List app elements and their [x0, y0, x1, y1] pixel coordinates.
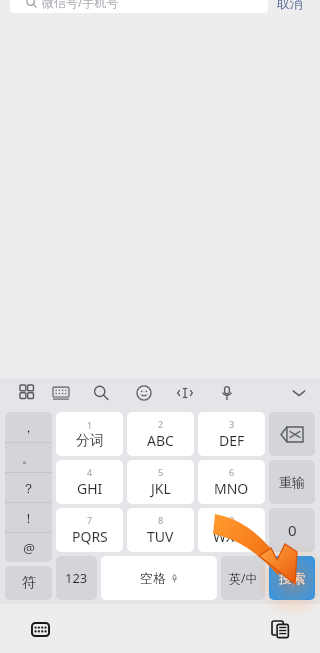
button[interactable]: 4	[56, 460, 123, 504]
staticText: 7	[87, 514, 93, 526]
staticText: 8	[158, 514, 164, 526]
staticText: 微信号/手机号	[42, 0, 119, 10]
staticText: DEF	[219, 431, 245, 450]
button[interactable]: Switch keyboard	[24, 613, 56, 645]
button[interactable]: Hide keyboard	[285, 378, 313, 408]
button[interactable]: 1	[56, 412, 123, 456]
staticText: @	[23, 539, 35, 557]
button[interactable]: Voice input	[213, 378, 241, 408]
staticText: MNO	[214, 479, 249, 498]
staticText: 1	[87, 419, 93, 431]
button[interactable]: Clipboard	[264, 613, 296, 645]
staticText: ！	[22, 510, 35, 526]
button[interactable]: 2	[127, 412, 194, 456]
button[interactable]: Search	[87, 378, 115, 408]
button[interactable]: 3	[198, 412, 265, 456]
button[interactable]: 6	[198, 460, 265, 504]
staticText: 空格	[140, 570, 166, 586]
staticText: 123	[65, 569, 88, 587]
staticText: GHI	[77, 479, 103, 498]
button[interactable]: 0	[269, 508, 315, 552]
button[interactable]: Keyboard layout	[47, 378, 75, 408]
button[interactable]: 微信号/手机号	[10, 0, 268, 13]
button[interactable]: 重输	[269, 460, 315, 504]
button[interactable]: Cursor	[171, 378, 199, 408]
staticText: 3	[229, 418, 235, 430]
button[interactable]: 符	[5, 566, 52, 600]
staticText: 0	[288, 520, 297, 540]
button[interactable]: 8	[127, 508, 194, 552]
staticText: PQRS	[72, 527, 108, 546]
button[interactable]: 搜索	[269, 556, 315, 600]
staticText: 分词	[76, 432, 104, 450]
staticText: 取消	[277, 0, 303, 11]
staticText: 符	[22, 574, 36, 592]
staticText: ABC	[147, 431, 174, 450]
button[interactable]: 9	[198, 508, 265, 552]
staticText: WXYZ	[213, 527, 251, 546]
staticText: ，	[22, 419, 35, 435]
staticText: ？	[22, 480, 35, 496]
button[interactable]: 取消	[268, 0, 312, 14]
button[interactable]: 5	[127, 460, 194, 504]
staticText: 。	[22, 450, 35, 466]
button[interactable]: Emoji	[130, 378, 158, 408]
staticText: 2	[158, 418, 164, 430]
staticText: 英/中	[229, 570, 258, 586]
staticText: 6	[229, 466, 235, 478]
button[interactable]: 空格	[101, 556, 217, 600]
staticText: 搜索	[279, 570, 305, 586]
staticText: 重输	[279, 474, 305, 490]
button[interactable]: Panel	[14, 378, 42, 408]
button[interactable]: 7	[56, 508, 123, 552]
staticText: TUV	[147, 527, 174, 546]
button[interactable]: ，	[5, 412, 52, 562]
button[interactable]: 英/中	[221, 556, 265, 600]
staticText: 9	[229, 514, 235, 526]
staticText: JKL	[151, 479, 171, 498]
button[interactable]: 123	[56, 556, 97, 600]
button[interactable]: Backspace	[269, 412, 315, 456]
staticText: 4	[87, 466, 93, 478]
staticText: 5	[158, 466, 164, 478]
